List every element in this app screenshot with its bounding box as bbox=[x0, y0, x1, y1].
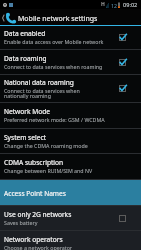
staticText: CDMA subscription bbox=[4, 158, 64, 167]
staticText: Use only 2G networks bbox=[4, 210, 72, 219]
staticText: Change between RUIM/SIM and NV bbox=[4, 167, 93, 174]
button[interactable]: National data roaming bbox=[119, 85, 126, 92]
staticText: 12 bbox=[111, 2, 117, 9]
button[interactable]: Network operators bbox=[0, 231, 141, 250]
button[interactable]: Use only 2G networks bbox=[0, 206, 141, 230]
button[interactable]: Use only 2G networks bbox=[119, 215, 126, 222]
button[interactable]: Network Mode bbox=[0, 103, 141, 128]
staticText: Access Point Names bbox=[4, 189, 66, 198]
button[interactable]: System select bbox=[0, 129, 141, 153]
staticText: Data roaming bbox=[4, 54, 47, 63]
button[interactable]: Mobile network settings bbox=[0, 13, 98, 23]
button[interactable]: Data roaming bbox=[119, 59, 126, 66]
staticText: Mobile network settings bbox=[18, 14, 98, 24]
staticText: Saves battery bbox=[4, 219, 38, 226]
staticText: Data enabled bbox=[4, 29, 46, 38]
staticText: Preferred network mode: GSM / WCDMA bbox=[4, 116, 105, 123]
staticText: Network Mode bbox=[4, 107, 50, 116]
button[interactable]: Data roaming bbox=[0, 50, 141, 74]
button[interactable]: Data enabled bbox=[119, 34, 126, 41]
button[interactable]: Access Point Names bbox=[0, 180, 141, 205]
staticText: Choose a network operator bbox=[4, 244, 73, 250]
staticText: 09:02 bbox=[123, 1, 138, 9]
staticText: Connect to data services when roaming bbox=[4, 63, 103, 70]
button[interactable]: CDMA subscription bbox=[0, 154, 141, 179]
staticText: Connect to data services when nationally… bbox=[4, 87, 105, 100]
staticText: Change the CDMA roaming mode bbox=[4, 142, 88, 149]
staticText: H bbox=[101, 1, 105, 8]
button[interactable]: Data enabled bbox=[0, 26, 141, 49]
staticText: System select bbox=[4, 133, 46, 142]
staticText: Network operators bbox=[4, 235, 63, 244]
button[interactable]: National data roaming bbox=[0, 75, 141, 102]
staticText: National data roaming bbox=[4, 78, 74, 87]
staticText: Enable data access over Mobile network bbox=[4, 38, 104, 45]
